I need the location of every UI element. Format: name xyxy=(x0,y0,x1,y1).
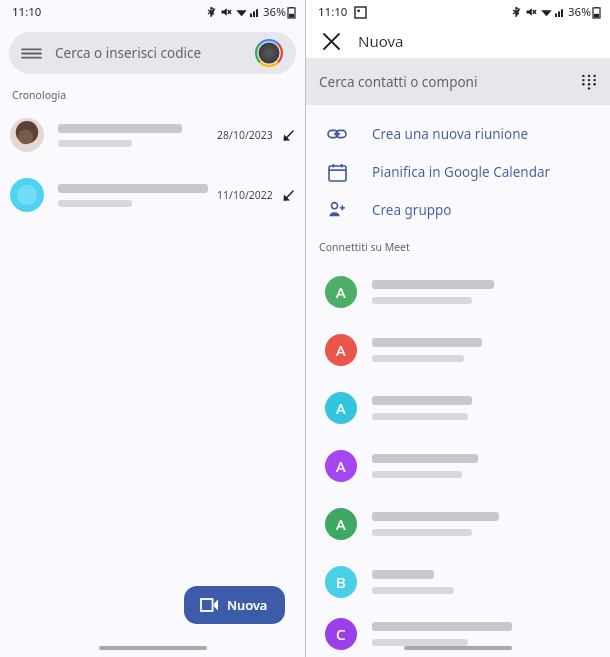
staticText: 11:10 xyxy=(318,4,348,20)
button[interactable]: Crea una nuova riunione xyxy=(306,115,610,153)
staticText: 36% xyxy=(263,4,286,20)
staticText: Cerca o inserisci codice xyxy=(55,44,255,62)
staticText: C xyxy=(336,624,346,644)
button[interactable]: A xyxy=(306,321,610,379)
other: Tastierino xyxy=(581,74,597,90)
button[interactable]: Account xyxy=(255,39,283,67)
staticText: A xyxy=(336,456,346,476)
staticText: Cronologia xyxy=(12,88,67,102)
button[interactable]: 28/10/2023 xyxy=(0,113,305,157)
staticText: Crea una nuova riunione xyxy=(372,125,529,143)
button[interactable]: Chiudi xyxy=(319,29,343,53)
button[interactable]: 11/10/2022 xyxy=(0,173,305,217)
staticText: A xyxy=(336,398,346,418)
button[interactable]: Nuova xyxy=(184,586,285,624)
button[interactable]: A xyxy=(306,263,610,321)
staticText: A xyxy=(336,340,346,360)
staticText: Pianifica in Google Calendar xyxy=(372,163,551,181)
other: Richiama xyxy=(282,129,295,142)
button[interactable]: Menu xyxy=(9,32,296,74)
staticText: B xyxy=(336,572,346,592)
staticText: 28/10/2023 xyxy=(217,128,273,142)
button[interactable]: C xyxy=(306,611,610,657)
staticText: Cerca contatti o componi xyxy=(319,73,581,91)
staticText: Crea gruppo xyxy=(372,201,452,219)
button[interactable]: A xyxy=(306,495,610,553)
button[interactable]: A xyxy=(306,437,610,495)
staticText: Nuova xyxy=(358,31,404,51)
staticText: A xyxy=(336,514,346,534)
button[interactable]: B xyxy=(306,553,610,611)
button[interactable]: Cerca contatti o componi xyxy=(306,58,610,105)
staticText: Connettiti su Meet xyxy=(319,240,410,254)
staticText: 11/10/2022 xyxy=(217,188,273,202)
staticText: 36% xyxy=(568,4,591,20)
staticText: A xyxy=(336,282,346,302)
button[interactable]: Crea gruppo xyxy=(306,191,610,229)
other: Richiama xyxy=(282,189,295,202)
button[interactable]: Pianifica in Google Calendar xyxy=(306,153,610,191)
other: Menu xyxy=(22,44,41,63)
button[interactable]: A xyxy=(306,379,610,437)
staticText: Nuova xyxy=(227,596,268,614)
staticText: 11:10 xyxy=(12,4,42,20)
